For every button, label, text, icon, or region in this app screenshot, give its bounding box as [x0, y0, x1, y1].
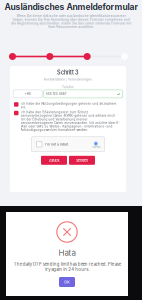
- button[interactable]: Zurück: [41, 156, 67, 165]
- button[interactable]: Senden: [69, 156, 95, 165]
- staticText: Telefon: [62, 85, 74, 89]
- staticText: ◉: [93, 140, 98, 146]
- staticText: Kontaktdaten / Veränderungen: [44, 78, 92, 81]
- staticText: +90: [25, 92, 31, 96]
- staticText: Ich habe die Nutzungsbedingungen gelesen…: [20, 102, 116, 109]
- staticText: OK: [64, 280, 70, 284]
- staticText: Ausländisches Anmeldeformular: [4, 2, 137, 12]
- staticText: ✓: [117, 91, 121, 96]
- staticText: Hata: [58, 248, 75, 258]
- staticText: The daily OTP sending limit has been rea…: [13, 262, 120, 272]
- staticText: Ich habe den Erläuterungstext zum Schutz…: [20, 110, 119, 132]
- button[interactable]: OK: [59, 277, 75, 287]
- staticText: 555 123 4567: [46, 92, 67, 96]
- staticText: Senden: [76, 158, 88, 162]
- staticText: I'm not a robot: [45, 142, 68, 146]
- staticText: Schritt 3: [57, 69, 79, 76]
- staticText: reCAPTCHA: [91, 146, 100, 149]
- staticText: Wenn Sie keine türkische oder ausländisc…: [11, 14, 131, 29]
- staticText: Zurück: [48, 158, 59, 162]
